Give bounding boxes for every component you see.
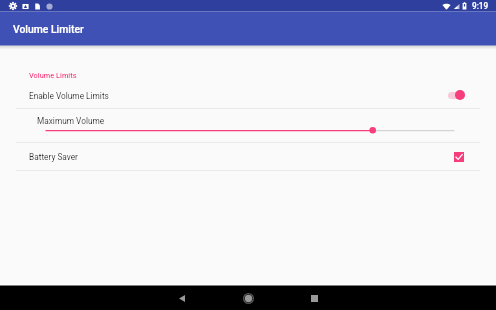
button[interactable]: Maximum Volume xyxy=(0,108,496,142)
button[interactable]: Battery Saver checkbox xyxy=(454,152,464,162)
button[interactable]: Battery Saver xyxy=(0,143,496,170)
staticText: Volume Limiter xyxy=(13,23,84,35)
button[interactable]: Home xyxy=(236,286,260,310)
button[interactable]: Enable Volume Limits xyxy=(0,83,496,109)
staticText: Maximum Volume xyxy=(37,116,105,126)
button[interactable]: Recent apps xyxy=(302,286,326,310)
staticText: 9:19 xyxy=(472,1,489,11)
staticText: Battery Saver xyxy=(29,152,78,162)
button[interactable]: Back xyxy=(170,286,194,310)
button[interactable]: Maximum Volume slider xyxy=(45,125,455,135)
staticText: Volume Limits xyxy=(29,71,77,80)
button[interactable]: Enable Volume Limits toggle xyxy=(446,88,470,102)
staticText: Enable Volume Limits xyxy=(29,91,109,101)
